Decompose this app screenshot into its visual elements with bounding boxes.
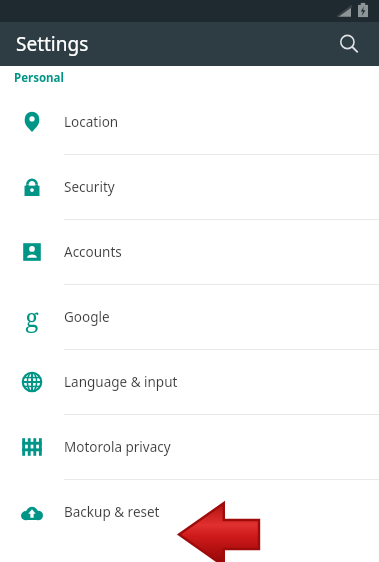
button[interactable]: Accounts xyxy=(0,220,379,285)
staticText: Security xyxy=(64,178,115,196)
button[interactable]: Location xyxy=(0,90,379,155)
staticText: Settings xyxy=(16,31,89,57)
button[interactable]: Backup & reset xyxy=(0,480,379,544)
button[interactable]: Motorola privacy xyxy=(0,415,379,480)
staticText: Backup & reset xyxy=(64,503,160,521)
staticText: Personal xyxy=(14,70,64,86)
staticText: Accounts xyxy=(64,243,122,261)
staticText: Motorola privacy xyxy=(64,438,171,456)
staticText: Language & input xyxy=(64,373,178,391)
staticText: Google xyxy=(64,308,110,326)
button[interactable]: Search xyxy=(329,24,369,64)
button[interactable]: Security xyxy=(0,155,379,220)
staticText: Location xyxy=(64,113,119,131)
staticText: g xyxy=(25,300,39,334)
button[interactable]: g xyxy=(0,285,379,350)
button[interactable]: Language & input xyxy=(0,350,379,415)
